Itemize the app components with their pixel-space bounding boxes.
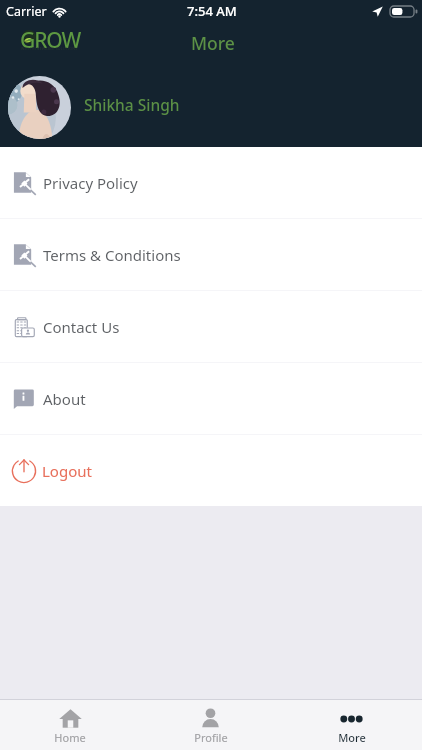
staticText: GROW: [20, 26, 81, 52]
button[interactable]: More: [281, 700, 422, 745]
staticText: Contact Us: [43, 317, 120, 337]
staticText: Profile: [194, 730, 228, 745]
staticText: Carrier: [6, 3, 47, 20]
staticText: More: [338, 730, 366, 745]
button[interactable]: Logout: [0, 435, 422, 506]
button[interactable]: Terms & Conditions: [0, 219, 422, 290]
staticText: Logout: [42, 461, 92, 481]
staticText: 7:54 AM: [187, 2, 237, 20]
button[interactable]: Contact Us: [0, 291, 422, 362]
staticText: More: [191, 31, 235, 55]
button[interactable]: Profile: [140, 700, 281, 745]
staticText: Privacy Policy: [43, 173, 138, 193]
staticText: Home: [54, 730, 86, 745]
button[interactable]: Privacy Policy: [0, 147, 422, 218]
button[interactable]: Home: [0, 700, 140, 745]
button[interactable]: Shikha Singh: [0, 68, 422, 147]
staticText: WITH RENEWABLE SOLUTIONS: [21, 46, 78, 51]
staticText: Shikha Singh: [84, 94, 180, 115]
staticText: About: [43, 389, 86, 409]
button[interactable]: About: [0, 363, 422, 434]
staticText: Terms & Conditions: [43, 245, 181, 265]
